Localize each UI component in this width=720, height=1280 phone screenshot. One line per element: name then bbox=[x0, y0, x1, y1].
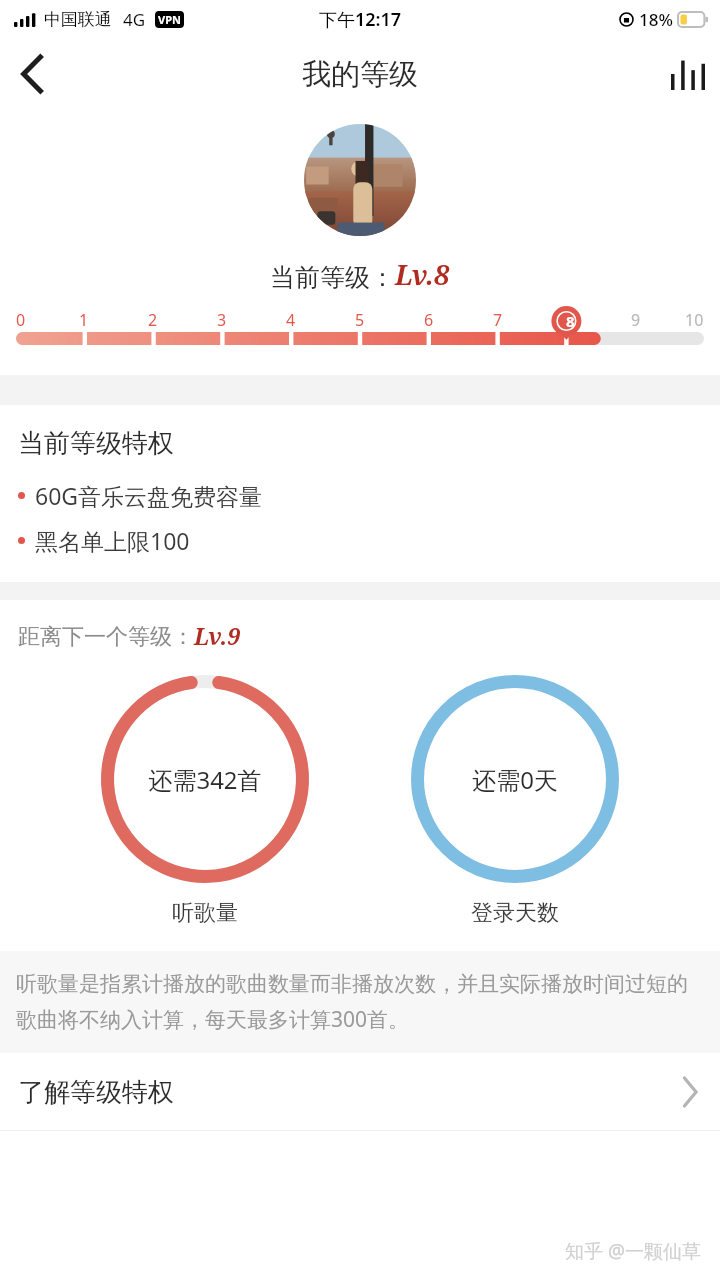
staticText: 10 bbox=[685, 309, 704, 331]
staticText: VPN bbox=[158, 12, 181, 27]
staticText: 3 bbox=[217, 309, 227, 331]
staticText: 1 bbox=[79, 309, 89, 331]
staticText: 9 bbox=[631, 309, 641, 331]
button[interactable]: Statistics bbox=[656, 42, 720, 106]
staticText: 4 bbox=[286, 309, 296, 331]
staticText: 18% bbox=[639, 8, 673, 31]
staticText: Lv.9 bbox=[194, 620, 241, 651]
staticText: 当前等级特权 bbox=[18, 427, 174, 460]
staticText: 4G bbox=[123, 8, 146, 31]
staticText: 还需0天 bbox=[472, 763, 558, 796]
staticText: 还需342首 bbox=[148, 763, 262, 796]
staticText: 听歌量是指累计播放的歌曲数量而非播放次数，并且实际播放时间过短的歌曲将不纳入计算… bbox=[16, 971, 704, 1033]
staticText: 了解等级特权 bbox=[18, 1076, 174, 1109]
staticText: 7 bbox=[493, 309, 503, 331]
staticText: 登录天数 bbox=[471, 899, 559, 927]
staticText: 听歌量 bbox=[172, 899, 238, 927]
button[interactable]: Back bbox=[0, 42, 64, 106]
staticText: 8 bbox=[566, 311, 567, 331]
staticText: 60G音乐云盘免费容量 bbox=[35, 480, 263, 511]
staticText: 距离下一个等级： bbox=[18, 623, 194, 651]
staticText: 当前等级： bbox=[270, 262, 395, 293]
staticText: 下午12:17 bbox=[319, 7, 402, 32]
staticText: 2 bbox=[148, 309, 158, 331]
staticText: 知乎 @一颗仙草 bbox=[565, 1238, 702, 1264]
staticText: 5 bbox=[355, 309, 365, 331]
staticText: 8 bbox=[562, 309, 572, 331]
staticText: 中国联通 bbox=[44, 9, 112, 30]
staticText: 0 bbox=[16, 309, 26, 331]
staticText: Lv.8 bbox=[395, 256, 450, 293]
staticText: 黑名单上限100 bbox=[35, 525, 190, 556]
staticText: 6 bbox=[424, 309, 434, 331]
staticText: 我的等级 bbox=[302, 56, 418, 93]
button[interactable]: 了解等级特权 bbox=[0, 1053, 720, 1131]
